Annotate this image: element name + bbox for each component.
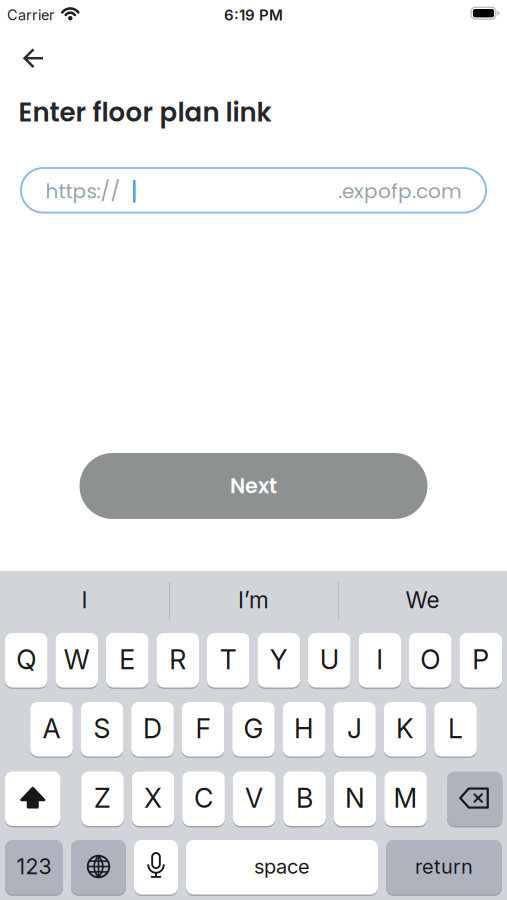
staticText: I	[81, 586, 87, 614]
button[interactable]: X	[132, 770, 174, 827]
button[interactable]: https://	[20, 167, 487, 214]
staticText: return	[415, 854, 473, 879]
staticText: Next	[230, 471, 277, 500]
button[interactable]: Y	[257, 632, 300, 688]
button[interactable]: H	[283, 701, 325, 757]
button[interactable]: A	[30, 701, 73, 757]
button[interactable]: Z	[81, 770, 124, 827]
staticText: J	[347, 712, 362, 745]
button[interactable]: I	[358, 632, 401, 688]
staticText: K	[396, 712, 414, 745]
button[interactable]	[134, 839, 178, 895]
staticText: L	[448, 712, 463, 745]
staticText: X	[144, 782, 162, 814]
button[interactable]: O	[409, 632, 451, 688]
staticText: Q	[16, 643, 36, 676]
button[interactable]: L	[434, 701, 477, 757]
staticText: A	[42, 712, 60, 745]
staticText: https://	[45, 177, 120, 205]
staticText: M	[394, 782, 418, 814]
button[interactable]: J	[333, 701, 376, 757]
button[interactable]: M	[384, 770, 427, 827]
staticText: E	[119, 643, 135, 676]
button[interactable]	[5, 770, 60, 827]
staticText: 6:19 PM	[224, 6, 283, 24]
button[interactable]: return	[386, 839, 502, 895]
button[interactable]: P	[459, 632, 502, 688]
button[interactable]: I	[0, 572, 168, 628]
button[interactable]	[12, 34, 56, 82]
staticText: We	[405, 586, 439, 614]
staticText: H	[294, 712, 314, 745]
staticText: C	[194, 782, 213, 814]
button[interactable]: E	[106, 632, 148, 688]
staticText: D	[143, 712, 162, 745]
button[interactable]: Next	[79, 453, 427, 519]
button[interactable]: S	[81, 701, 123, 757]
button[interactable]: We	[338, 572, 506, 628]
staticText: T	[220, 643, 237, 676]
staticText: P	[472, 643, 489, 676]
button[interactable]: G	[232, 701, 275, 757]
staticText: I	[376, 643, 383, 676]
button[interactable]: Q	[5, 632, 47, 688]
button[interactable]: space	[186, 839, 378, 895]
button[interactable]: T	[207, 632, 249, 688]
staticText: W	[64, 643, 90, 676]
button[interactable]: U	[308, 632, 350, 688]
staticText: .expofp.com	[338, 177, 462, 205]
staticText: Y	[270, 643, 288, 676]
button[interactable]: B	[283, 770, 326, 827]
button[interactable]: K	[384, 701, 426, 757]
button[interactable]: I’m	[169, 572, 337, 628]
button[interactable]	[71, 839, 126, 895]
button[interactable]: F	[182, 701, 224, 757]
staticText: G	[243, 712, 263, 745]
button[interactable]: N	[334, 770, 376, 827]
staticText: V	[245, 782, 263, 814]
button[interactable]	[447, 770, 502, 827]
button[interactable]: 123	[5, 839, 63, 895]
staticText: Enter floor plan link	[18, 94, 271, 131]
staticText: U	[320, 643, 339, 676]
button[interactable]: R	[156, 632, 199, 688]
staticText: F	[195, 712, 210, 745]
staticText: O	[420, 643, 440, 676]
button[interactable]: C	[182, 770, 225, 827]
button[interactable]: W	[55, 632, 98, 688]
staticText: Z	[94, 782, 111, 814]
button[interactable]: D	[131, 701, 174, 757]
button[interactable]: V	[233, 770, 275, 827]
staticText: I’m	[238, 586, 269, 614]
staticText: space	[254, 854, 310, 879]
staticText: N	[345, 782, 365, 814]
staticText: 123	[16, 854, 51, 879]
staticText: B	[296, 782, 313, 814]
staticText: Carrier	[7, 6, 54, 24]
staticText: R	[169, 643, 186, 676]
staticText: S	[93, 712, 110, 745]
